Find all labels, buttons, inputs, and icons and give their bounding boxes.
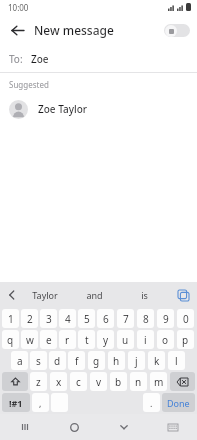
button[interactable]: Toggle — [164, 24, 190, 37]
button[interactable]: Stickers — [174, 286, 192, 304]
staticText: x — [56, 375, 62, 389]
button[interactable]: j — [128, 351, 145, 370]
button[interactable]: 4 — [59, 309, 76, 328]
staticText: Zoe — [31, 52, 49, 66]
button[interactable]: d — [49, 351, 66, 370]
button[interactable]: 9 — [157, 309, 174, 328]
button[interactable]: f — [68, 351, 85, 370]
staticText: !#1 — [9, 397, 23, 409]
staticText: 2 — [27, 312, 33, 326]
button[interactable]: Recents — [0, 414, 50, 440]
staticText: , — [39, 397, 42, 409]
button[interactable]: and — [69, 282, 119, 307]
staticText: i — [144, 333, 147, 347]
button[interactable]: l — [168, 351, 185, 370]
staticText: To: — [9, 52, 23, 66]
button[interactable]: 0 — [177, 309, 194, 328]
staticText: q — [7, 333, 14, 347]
button[interactable]: Taylor — [20, 282, 69, 307]
button[interactable]: 6 — [97, 309, 114, 328]
staticText: o — [162, 333, 169, 347]
staticText: w — [26, 333, 34, 347]
button[interactable]: . — [143, 393, 160, 412]
button[interactable]: Previous suggestions — [3, 286, 21, 304]
button[interactable]: Shift — [2, 372, 28, 391]
staticText: k — [154, 354, 160, 368]
button[interactable]: Back — [4, 17, 30, 43]
button[interactable]: Hide keyboard — [99, 414, 148, 440]
staticText: h — [113, 354, 120, 368]
staticText: Done — [167, 397, 190, 409]
staticText: a — [17, 354, 23, 368]
button[interactable]: e — [40, 330, 57, 349]
button[interactable]: h — [108, 351, 125, 370]
staticText: 9 — [163, 312, 169, 326]
button[interactable]: g — [88, 351, 105, 370]
button[interactable]: 3 — [40, 309, 57, 328]
staticText: 1 — [8, 312, 14, 326]
button[interactable]: 2 — [21, 309, 38, 328]
button[interactable]: , — [32, 393, 49, 412]
button[interactable]: x — [50, 372, 67, 391]
button[interactable]: z — [30, 372, 47, 391]
staticText: b — [115, 375, 122, 389]
staticText: Suggested — [9, 79, 49, 90]
staticText: s — [36, 354, 41, 368]
staticText: 10:00 — [8, 2, 29, 13]
staticText: y — [103, 333, 109, 347]
button[interactable]: i — [137, 330, 154, 349]
button[interactable]: s — [30, 351, 47, 370]
staticText: New message — [34, 22, 114, 38]
button[interactable]: Backspace — [170, 372, 195, 391]
button[interactable]: !#1 — [2, 393, 30, 412]
button[interactable]: b — [110, 372, 127, 391]
staticText: . — [150, 397, 153, 409]
button[interactable]: r — [59, 330, 76, 349]
button[interactable]: y — [97, 330, 114, 349]
button[interactable]: 8 — [137, 309, 154, 328]
staticText: and — [86, 289, 103, 301]
staticText: 8 — [143, 312, 149, 326]
staticText: d — [54, 354, 61, 368]
staticText: 6 — [103, 312, 109, 326]
button[interactable]: c — [70, 372, 87, 391]
staticText: g — [93, 354, 100, 368]
button[interactable]: Zoe Taylor — [0, 95, 197, 123]
staticText: v — [96, 375, 102, 389]
button[interactable]: Home — [50, 414, 99, 440]
button[interactable]: Keyboard layout — [148, 414, 197, 440]
button[interactable]: n — [130, 372, 147, 391]
staticText: 7 — [123, 312, 129, 326]
staticText: 5 — [84, 312, 90, 326]
button[interactable]: m — [150, 372, 167, 391]
button[interactable]: v — [90, 372, 107, 391]
staticText: n — [135, 375, 142, 389]
staticText: 4 — [65, 312, 71, 326]
button[interactable]: p — [177, 330, 194, 349]
staticText: m — [154, 375, 164, 389]
staticText: Taylor — [32, 289, 58, 301]
button[interactable]: 5 — [78, 309, 95, 328]
button[interactable]: w — [21, 330, 38, 349]
staticText: e — [46, 333, 52, 347]
staticText: 3 — [46, 312, 52, 326]
staticText: t — [85, 333, 89, 347]
button[interactable]: 1 — [2, 309, 19, 328]
staticText: u — [122, 333, 129, 347]
staticText: is — [141, 289, 148, 301]
staticText: f — [75, 354, 79, 368]
staticText: j — [135, 354, 138, 368]
button[interactable]: k — [148, 351, 165, 370]
staticText: 0 — [183, 312, 189, 326]
button[interactable]: Done — [162, 393, 195, 412]
button[interactable]: 7 — [117, 309, 134, 328]
button[interactable]: q — [2, 330, 19, 349]
button[interactable]: t — [78, 330, 95, 349]
staticText: c — [76, 375, 81, 389]
button[interactable]: u — [117, 330, 134, 349]
button[interactable]: is — [119, 282, 169, 307]
staticText: z — [36, 375, 41, 389]
button[interactable]: o — [157, 330, 174, 349]
button[interactable]: a — [11, 351, 28, 370]
